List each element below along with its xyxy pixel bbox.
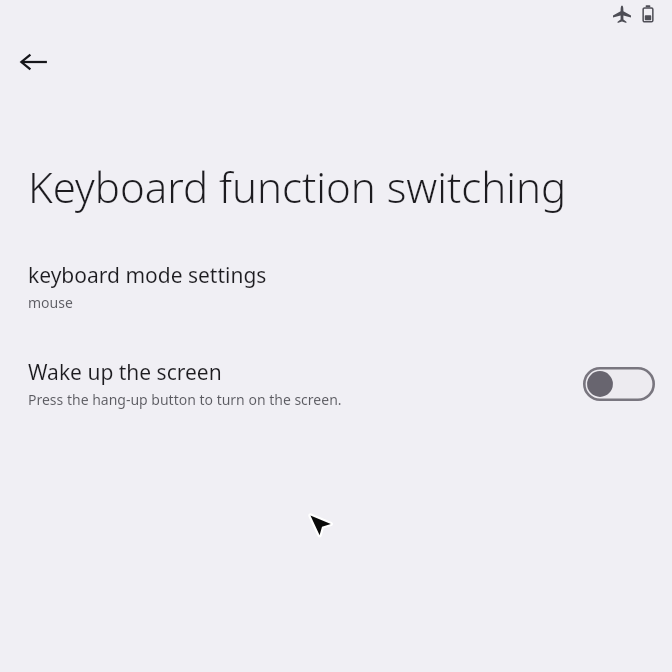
button[interactable]: keyboard mode settings — [0, 259, 672, 314]
staticText: keyboard mode settings — [28, 261, 267, 290]
button[interactable]: Wake up the screen — [0, 358, 672, 409]
staticText: mouse — [28, 293, 73, 312]
staticText: Press the hang-up button to turn on the … — [28, 390, 342, 409]
staticText: Wake up the screen — [28, 358, 222, 387]
button[interactable]: Wake up the screen toggle, off — [583, 367, 655, 401]
button[interactable]: Back — [8, 36, 60, 88]
other: Airplane mode on — [612, 4, 632, 24]
staticText: Keyboard function switching — [28, 158, 567, 215]
other: Battery — [638, 4, 658, 24]
